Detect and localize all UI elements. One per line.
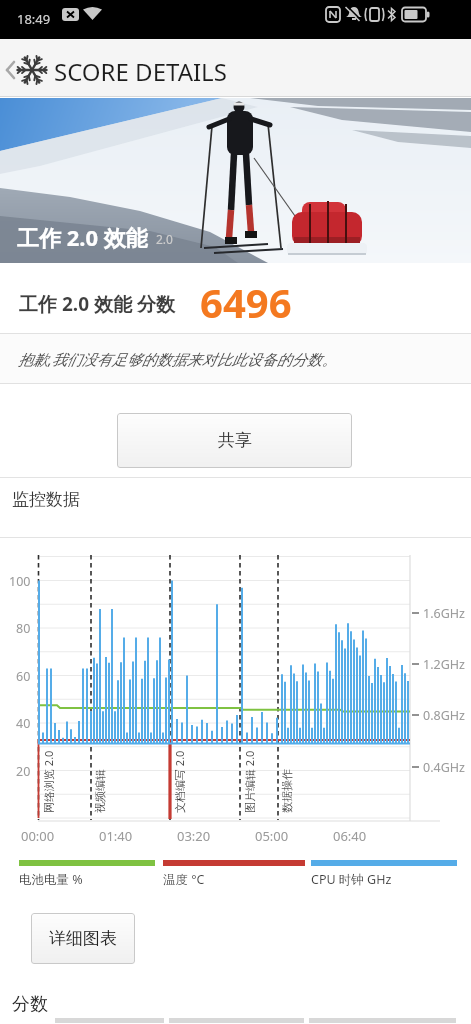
staticText: 温度 °C bbox=[163, 871, 205, 888]
staticText: 监控数据 bbox=[12, 489, 80, 510]
button[interactable]: 共享 bbox=[117, 413, 352, 468]
staticText: 18:49 bbox=[17, 10, 51, 28]
staticText: 20 bbox=[16, 763, 31, 780]
staticText: 工作 2.0 效能 bbox=[17, 222, 148, 252]
staticText: 0.8GHz bbox=[423, 707, 465, 724]
staticText: 1.2GHz bbox=[423, 656, 465, 673]
staticText: 60 bbox=[16, 668, 31, 685]
staticText: 03:20 bbox=[177, 827, 211, 845]
staticText: 6496 bbox=[200, 275, 292, 329]
staticText: 分数 bbox=[12, 993, 48, 1016]
staticText: 40 bbox=[16, 715, 31, 732]
staticText: 1.6GHz bbox=[423, 605, 465, 622]
staticText: 06:40 bbox=[333, 827, 367, 845]
staticText: 工作 2.0 效能 分数 bbox=[19, 291, 175, 317]
staticText: CPU 时钟 GHz bbox=[311, 871, 392, 888]
staticText: 图片编辑 2.0 bbox=[242, 750, 256, 813]
staticText: 00:00 bbox=[21, 827, 55, 845]
staticText: 文档编写 2.0 bbox=[172, 750, 186, 813]
staticText: 视频编辑 bbox=[93, 769, 107, 813]
staticText: 数据操作 bbox=[280, 769, 294, 813]
staticText: 0.4GHz bbox=[423, 759, 465, 776]
staticText: 网络浏览 2.0 bbox=[41, 750, 55, 813]
staticText: 抱歉,我们没有足够的数据来对比此设备的分数。 bbox=[18, 349, 337, 369]
button[interactable]: 详细图表 bbox=[31, 913, 135, 964]
staticText: SCORE DETAILS bbox=[54, 55, 227, 88]
staticText: 80 bbox=[16, 620, 31, 637]
staticText: 2.0 bbox=[156, 231, 173, 247]
staticText: 共享 bbox=[218, 430, 252, 451]
staticText: 01:40 bbox=[99, 827, 133, 845]
staticText: 05:00 bbox=[255, 827, 289, 845]
staticText: 详细图表 bbox=[49, 928, 117, 949]
staticText: 100 bbox=[9, 573, 31, 590]
staticText: 电池电量 % bbox=[19, 871, 83, 888]
